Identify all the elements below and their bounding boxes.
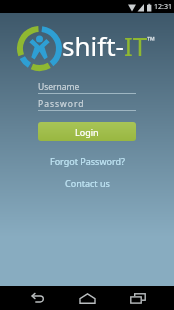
button[interactable] — [68, 286, 106, 310]
button[interactable]: Username — [38, 77, 136, 94]
staticText: 12:31 — [154, 2, 172, 12]
button[interactable]: Forgot Password? — [0, 153, 174, 169]
button[interactable] — [18, 286, 56, 310]
staticText: Password — [38, 98, 85, 110]
staticText: Login — [75, 126, 99, 138]
button[interactable]: Contact us — [0, 175, 174, 191]
staticText: Forgot Password? — [50, 155, 125, 167]
button[interactable]: Password — [38, 95, 136, 111]
staticText: Contact us — [65, 177, 110, 189]
button[interactable] — [119, 286, 157, 310]
staticText: shift-IT™ — [62, 28, 155, 63]
button[interactable]: Login — [38, 122, 136, 141]
staticText: Username — [38, 81, 80, 93]
